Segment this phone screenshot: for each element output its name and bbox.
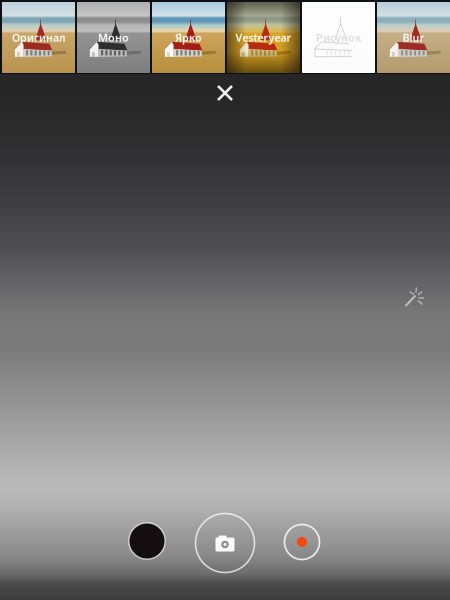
button[interactable]: Моно	[75, 0, 150, 74]
button[interactable]: Blur	[375, 0, 450, 74]
button[interactable]: Рисунок	[300, 0, 375, 74]
staticText: Ярко	[175, 30, 202, 45]
button[interactable]: Auto enhance	[401, 282, 429, 310]
button[interactable]: Record video	[281, 521, 323, 563]
staticText: Vesteryear	[235, 30, 291, 45]
button[interactable]: Close	[205, 75, 245, 111]
button[interactable]: Ярко	[150, 0, 225, 74]
button[interactable]: Оригинал	[0, 0, 75, 74]
staticText: Оригинал	[12, 30, 65, 45]
button[interactable]: Last photo	[125, 519, 169, 563]
staticText: Рисунок	[316, 30, 361, 45]
button[interactable]: Vesteryear	[225, 0, 300, 74]
staticText: Blur	[402, 30, 424, 45]
button[interactable]: Take photo	[192, 510, 258, 576]
staticText: Моно	[98, 30, 129, 45]
